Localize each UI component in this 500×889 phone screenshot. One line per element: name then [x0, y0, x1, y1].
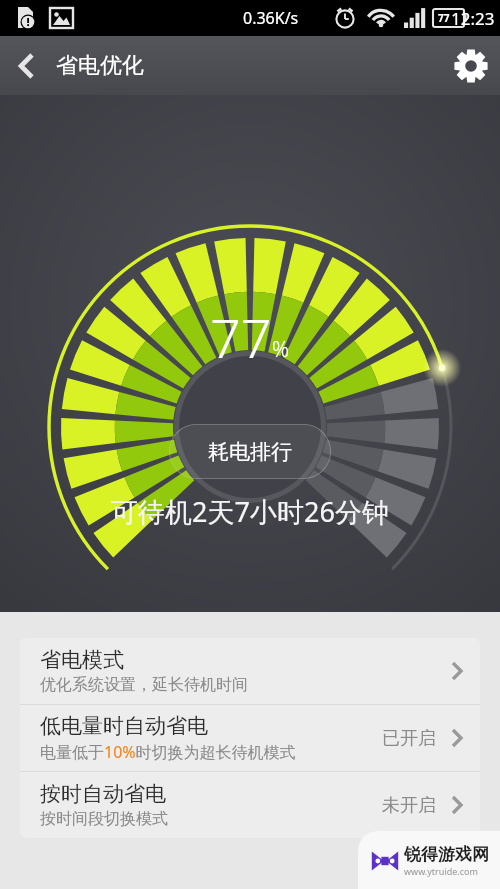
button[interactable]: 低电量时自动省电 — [20, 705, 480, 771]
button[interactable]: 耗电排行 — [169, 424, 331, 479]
staticText: % — [272, 335, 290, 364]
staticText: www.ytruide.com — [404, 865, 478, 877]
button[interactable]: Back — [0, 40, 52, 92]
staticText: 按时自动省电 — [40, 781, 166, 807]
staticText: 未开启 — [382, 794, 436, 817]
staticText: 77 — [438, 11, 450, 25]
staticText: 锐得游戏网 — [404, 844, 489, 865]
staticText: 省电模式 — [40, 647, 124, 673]
staticText: 优化系统设置，延长待机时间 — [40, 675, 248, 695]
button[interactable]: 按时自动省电 — [20, 772, 480, 838]
button[interactable]: Settings — [442, 37, 500, 95]
staticText: 0.36K/s — [243, 7, 299, 29]
staticText: 12:23 — [451, 7, 495, 30]
staticText: 电量低于10%时切换为超长待机模式 — [40, 741, 296, 763]
staticText: 77 — [210, 300, 272, 374]
staticText: 可待机2天7小时26分钟 — [0, 493, 500, 530]
staticText: 耗电排行 — [208, 439, 292, 465]
staticText: 按时间段切换模式 — [40, 809, 168, 829]
button[interactable]: 省电模式 — [20, 638, 480, 704]
staticText: 已开启 — [382, 727, 436, 750]
staticText: 低电量时自动省电 — [40, 713, 208, 739]
staticText: 省电优化 — [56, 52, 144, 80]
